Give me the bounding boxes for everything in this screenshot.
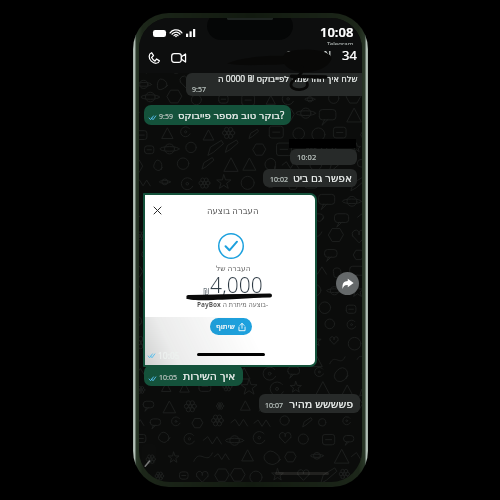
button[interactable]: Video call: [169, 48, 188, 67]
staticText: 4,000: [210, 271, 263, 300]
staticText: ₪: [203, 286, 210, 297]
staticText: 10:05: [158, 350, 180, 362]
staticText: שיתוף: [216, 322, 235, 331]
staticText: העברה של: [216, 263, 251, 273]
button[interactable]: 9:59: [144, 105, 291, 125]
staticText: Contact N: [286, 48, 332, 61]
button[interactable]: Close: [150, 203, 165, 218]
staticText: PayBox: [197, 300, 221, 309]
staticText: 10:07: [265, 401, 283, 411]
button[interactable]: 10:02: [263, 169, 357, 187]
staticText: שלח איך ההרשמה לפייבוקס ₪ 0000 ה: [218, 73, 358, 85]
button[interactable]: 10:07: [259, 394, 360, 413]
button[interactable]: Voice call: [144, 48, 163, 67]
staticText: 10:08: [320, 23, 354, 41]
staticText: 34: [342, 46, 357, 64]
staticText: אפשר גם ביט: [293, 171, 352, 185]
staticText: העברה בוצעה: [207, 205, 259, 217]
staticText: 10:05: [159, 373, 177, 383]
button[interactable]: שיתוף: [210, 318, 252, 335]
staticText: 9:57: [192, 85, 206, 95]
staticText: פשששש מהיר: [289, 396, 354, 411]
staticText: 9:59: [159, 112, 173, 122]
staticText: איך השירות: [183, 368, 236, 383]
staticText: 10:02: [297, 152, 317, 162]
staticText: 10:02: [270, 175, 288, 185]
staticText: בוקר טוב מספר פייבוקס?: [178, 108, 285, 122]
button[interactable]: 10:05: [144, 365, 243, 386]
staticText: Telegram: [327, 40, 354, 45]
button[interactable]: Forward: [336, 272, 359, 295]
staticText: בוצעה מיתרת ה-: [221, 300, 269, 309]
